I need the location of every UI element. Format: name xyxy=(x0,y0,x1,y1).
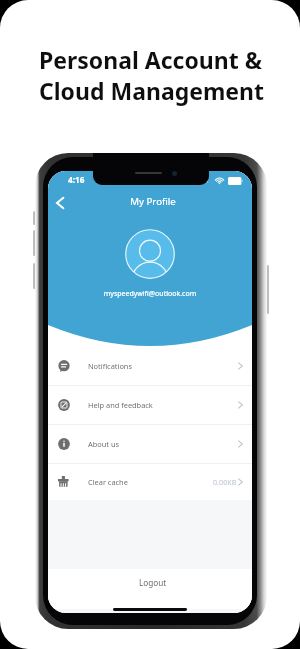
staticText: Notifications xyxy=(88,361,132,371)
staticText: 4:16 xyxy=(68,174,85,185)
staticText: Logout xyxy=(139,577,167,588)
staticText: Clear cache xyxy=(88,477,128,487)
button[interactable]: Help and feedback xyxy=(48,386,252,424)
staticText: myspeedywifi@outlook.com xyxy=(48,289,252,299)
button[interactable]: About us xyxy=(48,425,252,463)
button[interactable]: Notifications xyxy=(48,347,252,385)
staticText: My Profile xyxy=(51,195,252,208)
staticText: Help and feedback xyxy=(88,400,153,410)
button[interactable]: Logout xyxy=(48,569,252,609)
staticText: About us xyxy=(88,439,120,449)
staticText: Personal Account & Cloud Management xyxy=(39,44,265,107)
button[interactable]: Back xyxy=(48,191,72,215)
staticText: 0.00KB xyxy=(213,477,237,487)
button[interactable]: Clear cache xyxy=(48,464,252,500)
